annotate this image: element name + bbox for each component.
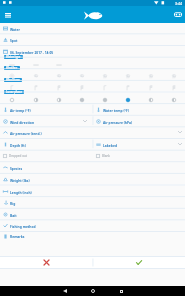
staticText: Water temp (°F)	[103, 108, 129, 112]
button[interactable]: Open navigation menu	[0, 6, 15, 23]
staticText: Air pressure (tend.)	[10, 131, 42, 135]
button[interactable]: Lunar phase option 4	[70, 96, 93, 104]
button[interactable]: Wind force option 1	[0, 84, 24, 92]
staticText: Species	[10, 166, 23, 170]
button[interactable]: Weather option 6	[116, 72, 139, 80]
button[interactable]: Water type option 6	[116, 61, 139, 69]
button[interactable]: Air pressure (hPa)	[92, 115, 185, 127]
button[interactable]: Lunar phase option 7	[139, 96, 162, 104]
button[interactable]: Save	[92, 257, 185, 268]
button[interactable]: Weather option 4	[70, 72, 93, 80]
staticText: Lunar phase	[6, 90, 22, 94]
staticText: Weight (lbs)	[10, 178, 30, 182]
button[interactable]: Wind force option 5	[93, 84, 116, 92]
staticText: Blank	[102, 154, 110, 158]
staticText: Water type	[6, 55, 21, 59]
button[interactable]: Weather option 1	[0, 72, 24, 80]
button[interactable]: Wind force option 8	[162, 84, 185, 92]
button[interactable]: Spot	[0, 33, 185, 45]
button[interactable]: Length (inch)	[0, 185, 185, 197]
button[interactable]: Water temp (°F)	[92, 103, 185, 115]
staticText: Bait	[10, 213, 17, 217]
button[interactable]: Lunar phase option 5	[93, 96, 116, 104]
staticText: Depth (ft)	[10, 143, 26, 147]
button[interactable]: Wind force option 6	[116, 84, 139, 92]
staticText: Fishing method	[10, 224, 36, 228]
button[interactable]: Lunar phase option 3	[47, 96, 70, 104]
staticText: Spot	[10, 38, 18, 42]
button[interactable]: Water type option 7	[139, 61, 162, 69]
staticText: Air temp (°F)	[10, 108, 31, 112]
button[interactable]: Weather option 8	[162, 72, 185, 80]
button[interactable]: Lunar phase option 1	[0, 96, 24, 104]
button[interactable]: Water type option 4	[70, 61, 93, 69]
button[interactable]: Weather option 7	[139, 72, 162, 80]
button[interactable]: Wind direction	[0, 115, 92, 127]
button[interactable]: Lunar phase option 8	[162, 96, 185, 104]
button[interactable]: Wind force option 3	[47, 84, 70, 92]
button[interactable]: 06. September 2017 - 14:05	[0, 45, 185, 57]
button[interactable]: Species	[0, 161, 185, 173]
button[interactable]: Bait	[0, 208, 185, 220]
button[interactable]: Lunar phase option 2	[24, 96, 47, 104]
button[interactable]: Home	[79, 286, 107, 296]
staticText: Rig	[10, 201, 16, 205]
button[interactable]: Blank	[92, 150, 185, 162]
staticText: Lakebed	[103, 143, 117, 147]
button[interactable]: Wind force option 4	[70, 84, 93, 92]
button[interactable]: Back	[51, 286, 79, 296]
button[interactable]: Water type option 2	[24, 61, 47, 69]
button[interactable]: Air pressure (tend.)	[0, 126, 185, 138]
button[interactable]: Water type option 8	[162, 61, 185, 69]
button[interactable]: Take photo	[170, 6, 185, 23]
staticText: Wind force	[6, 78, 20, 82]
button[interactable]: Weather option 3	[47, 72, 70, 80]
button[interactable]: Cancel	[0, 257, 92, 268]
button[interactable]: Weather option 5	[93, 72, 116, 80]
button[interactable]: Dropped out	[0, 150, 92, 162]
staticText: Wind direction	[10, 120, 35, 124]
button[interactable]: Depth (ft)	[0, 138, 92, 150]
button[interactable]: Remarks	[0, 231, 185, 256]
button[interactable]: Lakebed	[92, 138, 185, 150]
button[interactable]: Weather option 2	[24, 72, 47, 80]
button[interactable]: Water type option 5	[93, 61, 116, 69]
staticText: Water	[10, 27, 20, 31]
staticText: 06. September 2017 - 14:05	[10, 50, 54, 54]
staticText: Weather	[6, 66, 18, 70]
button[interactable]: Water type option 3	[47, 61, 70, 69]
staticText: 3:44	[175, 1, 183, 6]
button[interactable]: Air temp (°F)	[0, 103, 92, 115]
button[interactable]: Fishing method	[0, 219, 185, 231]
button[interactable]: Weight (lbs)	[0, 173, 185, 185]
staticText: Dropped out	[9, 154, 27, 158]
button[interactable]: Lunar phase option 6	[116, 96, 139, 104]
staticText: Length (inch)	[10, 190, 32, 194]
staticText: Air pressure (hPa)	[103, 120, 133, 124]
button[interactable]: Wind force option 7	[139, 84, 162, 92]
button[interactable]: Water	[0, 22, 185, 34]
button[interactable]: Water type option 1	[0, 61, 24, 69]
button[interactable]: Wind force option 2	[24, 84, 47, 92]
button[interactable]: Recents	[107, 286, 135, 296]
staticText: Remarks	[10, 234, 25, 238]
button[interactable]: Rig	[0, 196, 185, 208]
